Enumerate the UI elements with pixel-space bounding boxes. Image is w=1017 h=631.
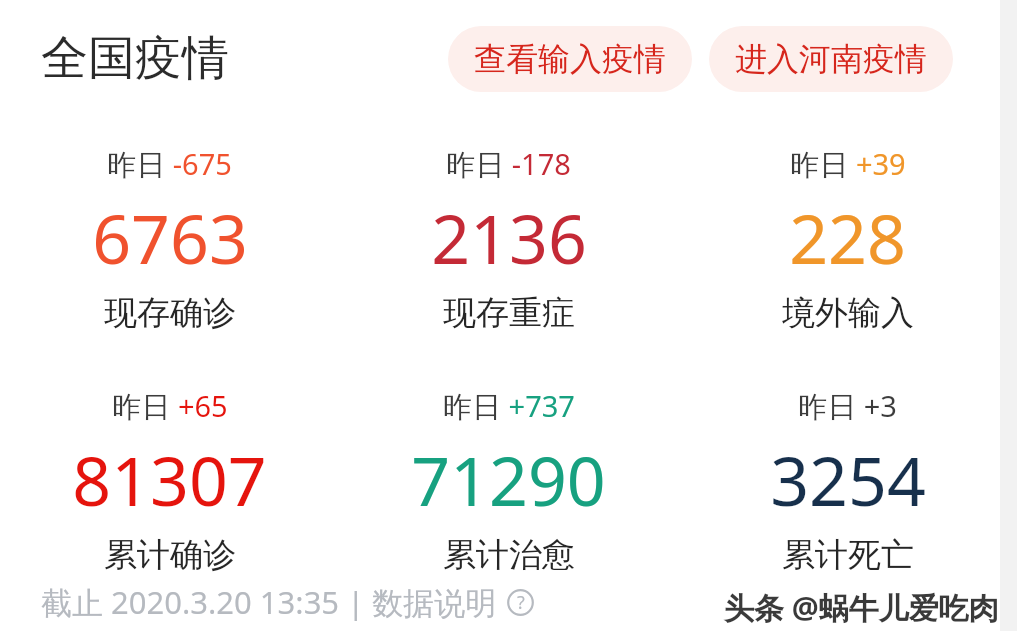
button[interactable]: 昨日 +737 [339,386,678,576]
button[interactable]: 昨日 +39 [678,144,1017,334]
staticText: 查看输入疫情 [474,39,666,79]
staticText: 累计死亡 [782,534,914,576]
staticText: 昨日 +3 [798,386,897,426]
staticText: 81307 [72,433,267,526]
staticText: 昨日 +737 [443,386,575,426]
staticText: ? [517,590,525,615]
button[interactable]: 昨日 -178 [339,144,678,334]
staticText: 昨日 +39 [790,144,906,184]
button[interactable]: 昨日 +3 [678,386,1017,576]
staticText: 进入河南疫情 [735,39,927,79]
staticText: 截止 2020.3.20 13:35 | 数据说明 [41,581,497,623]
staticText: 昨日 -675 [107,144,232,184]
staticText: 境外输入 [782,292,914,334]
staticText: 昨日 +65 [112,386,228,426]
staticText: 现存确诊 [104,292,236,334]
staticText: 昨日 -178 [446,144,571,184]
button[interactable]: 进入河南疫情 [709,26,953,92]
staticText: 现存重症 [443,292,575,334]
button[interactable]: 昨日 -675 [0,144,339,334]
staticText: 头条 @蜗牛儿爱吃肉 [724,587,999,628]
button[interactable]: 截止 2020.3.20 13:35 | 数据说明 [41,581,534,623]
staticText: 228 [789,191,906,284]
other: Data explanation help [507,589,534,616]
button[interactable]: 昨日 +65 [0,386,339,576]
staticText: 累计确诊 [104,534,236,576]
staticText: 3254 [770,433,926,526]
staticText: 71290 [411,433,606,526]
button[interactable]: 查看输入疫情 [448,26,692,92]
staticText: 累计治愈 [443,534,575,576]
staticText: 全国疫情 [41,29,229,88]
staticText: 6763 [92,191,248,284]
staticText: 2136 [431,191,587,284]
